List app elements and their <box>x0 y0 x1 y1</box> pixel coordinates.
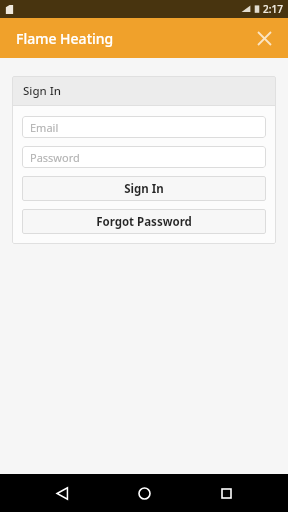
staticText: Forgot Password <box>96 214 192 230</box>
button[interactable]: Home <box>124 474 164 512</box>
staticText: Sign In <box>23 83 62 99</box>
staticText: Sign In <box>124 181 164 197</box>
staticText: Email <box>30 120 59 135</box>
button[interactable]: Email <box>22 116 266 138</box>
button[interactable]: Back <box>42 474 82 512</box>
staticText: Password <box>30 150 80 165</box>
button[interactable]: Forgot Password <box>22 209 266 234</box>
button[interactable]: Sign In <box>22 176 266 201</box>
staticText: Flame Heating <box>16 29 114 48</box>
button[interactable]: Close <box>248 22 280 54</box>
staticText: 2:17 <box>263 2 283 16</box>
button[interactable]: Password <box>22 146 266 168</box>
button[interactable]: Recent apps <box>206 474 246 512</box>
